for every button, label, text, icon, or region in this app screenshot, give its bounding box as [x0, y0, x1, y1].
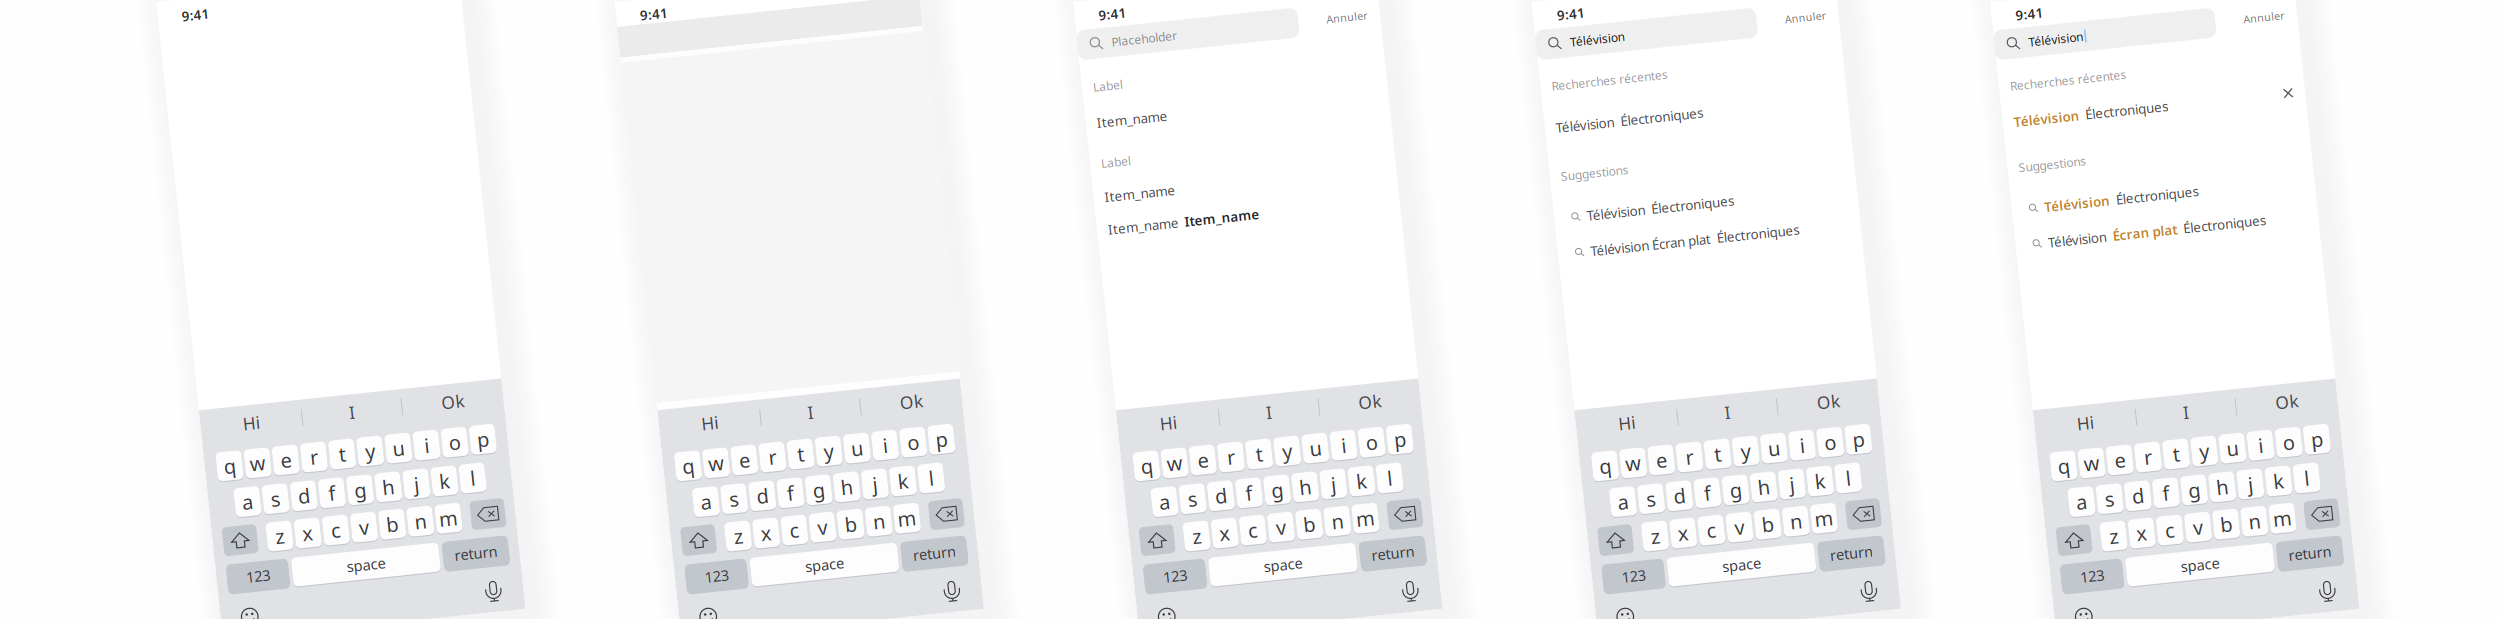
button[interactable]: d [1155, 494, 1181, 523]
button[interactable]: j [1269, 494, 1294, 523]
button[interactable]: s [1586, 494, 1611, 523]
button[interactable]: y [309, 456, 335, 485]
button[interactable]: r [2087, 456, 2112, 485]
button[interactable]: y [768, 456, 794, 485]
button[interactable]: i [1741, 456, 1767, 485]
button[interactable]: n [810, 531, 836, 560]
button[interactable]: y [1226, 456, 1252, 485]
button[interactable]: space [690, 569, 838, 598]
button[interactable]: x [238, 531, 264, 560]
button[interactable]: p [881, 456, 907, 485]
button[interactable]: m [1755, 531, 1781, 560]
button[interactable]: c [2101, 531, 2127, 560]
button[interactable]: u [1254, 456, 1280, 485]
button[interactable]: d [1614, 494, 1640, 523]
button[interactable]: s [210, 494, 236, 523]
button[interactable]: I [1174, 412, 1276, 448]
button[interactable]: f [1642, 494, 1668, 523]
button[interactable]: Dictate [872, 608, 904, 619]
button[interactable]: u [796, 456, 822, 485]
button[interactable]: z [1127, 531, 1153, 560]
button[interactable]: w [1571, 456, 1597, 485]
button[interactable]: space [1149, 569, 1297, 598]
button[interactable]: l [408, 494, 434, 523]
button[interactable]: h [782, 494, 808, 523]
button[interactable]: e [2058, 456, 2084, 485]
button[interactable]: return [842, 569, 908, 598]
button[interactable]: Hi [1073, 412, 1174, 448]
button[interactable]: Delete [1332, 531, 1367, 560]
button[interactable]: b [2157, 531, 2183, 560]
button[interactable]: t [739, 456, 765, 485]
button[interactable]: Dictate [2248, 608, 2280, 619]
button[interactable]: c [725, 531, 751, 560]
button[interactable]: 123 [166, 569, 228, 598]
button[interactable]: c [1184, 531, 1210, 560]
button[interactable]: Télévision [1542, 121, 1806, 138]
button[interactable]: r [1628, 456, 1654, 485]
button[interactable]: d [2072, 494, 2098, 523]
button[interactable]: v [1212, 531, 1238, 560]
button[interactable]: k [838, 494, 864, 523]
button[interactable]: r [1170, 456, 1195, 485]
button[interactable]: b [1699, 531, 1725, 560]
button[interactable]: 123 [625, 569, 687, 598]
button[interactable]: j [352, 494, 377, 523]
button[interactable]: u [1713, 456, 1739, 485]
button[interactable]: o [2228, 456, 2254, 485]
button[interactable]: j [2186, 494, 2211, 523]
button[interactable]: w [654, 456, 680, 485]
button[interactable]: Ok [2193, 412, 2294, 448]
button[interactable]: n [352, 531, 377, 560]
button[interactable]: w [196, 456, 222, 485]
button[interactable]: z [2044, 531, 2070, 560]
button[interactable]: Télévision [2001, 115, 2265, 133]
button[interactable]: I [1633, 412, 1734, 448]
button[interactable]: p [422, 456, 448, 485]
button[interactable]: Delete [874, 531, 908, 560]
button[interactable]: u [337, 456, 363, 485]
button[interactable]: Dictate [1331, 608, 1363, 619]
button[interactable]: g [2129, 494, 2155, 523]
button[interactable]: Hi [1531, 412, 1633, 448]
button[interactable]: m [2214, 531, 2240, 560]
button[interactable]: i [366, 456, 392, 485]
button[interactable]: x [1614, 531, 1640, 560]
button[interactable]: 123 [1083, 569, 1145, 598]
button[interactable]: w [2030, 456, 2056, 485]
button[interactable]: t [281, 456, 307, 485]
button[interactable]: f [267, 494, 293, 523]
button[interactable]: k [380, 494, 406, 523]
button[interactable]: f [725, 494, 751, 523]
button[interactable]: k [1755, 494, 1781, 523]
button[interactable]: e [1600, 456, 1626, 485]
button[interactable]: r [711, 456, 737, 485]
button[interactable]: g [754, 494, 779, 523]
button[interactable]: l [2242, 494, 2268, 523]
button[interactable]: e [224, 456, 250, 485]
button[interactable]: h [323, 494, 349, 523]
button[interactable]: Delete [2249, 531, 2284, 560]
button[interactable]: space [2066, 569, 2214, 598]
button[interactable]: n [1727, 531, 1753, 560]
button[interactable]: 123 [2000, 569, 2062, 598]
button[interactable]: z [1586, 531, 1611, 560]
button[interactable]: y [1685, 456, 1711, 485]
button[interactable]: v [754, 531, 779, 560]
button[interactable]: s [1127, 494, 1153, 523]
button[interactable]: j [1727, 494, 1753, 523]
button[interactable]: b [323, 531, 349, 560]
